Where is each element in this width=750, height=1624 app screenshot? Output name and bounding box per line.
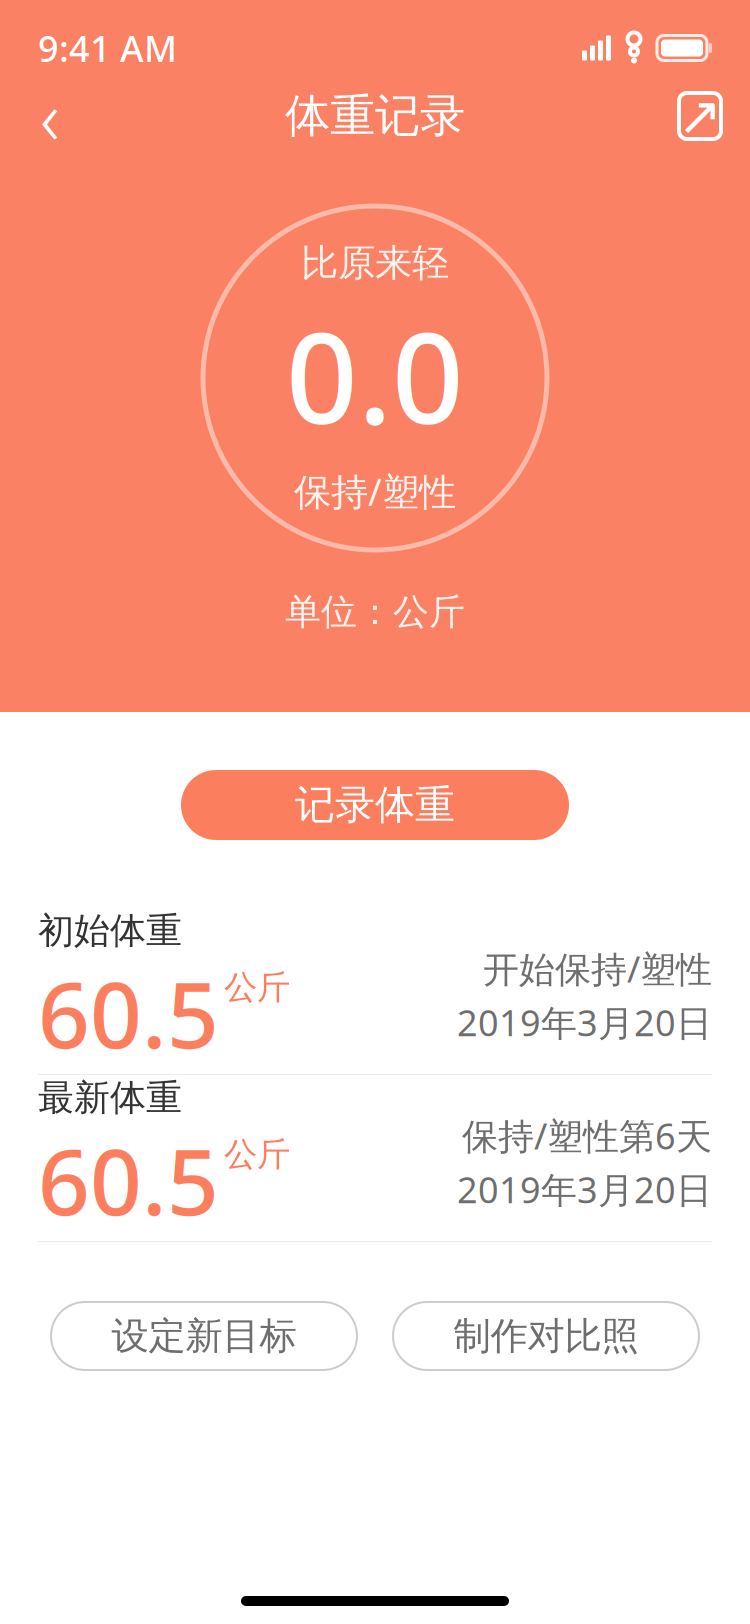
staticText: 保持/塑性 [294,466,456,516]
button[interactable]: 设定新目标 [51,1302,357,1370]
staticText: 初始体重 [38,909,182,953]
staticText: 60.5 [38,953,219,1073]
button[interactable]: 制作对比照 [393,1302,699,1370]
staticText: ↗ [677,86,722,146]
staticText: 体重记录 [285,88,465,144]
button[interactable]: 返回 [14,80,86,152]
staticText: ‹ [40,66,60,166]
staticText: 9:41 AM [38,24,177,72]
staticText: 最新体重 [38,1076,182,1120]
staticText: 2019年3月20日 [457,1165,712,1213]
staticText: 公斤 [224,967,290,1008]
staticText: 开始保持/塑性 [483,945,712,992]
staticText: 记录体重 [295,780,455,829]
staticText: 60.5 [38,1120,219,1240]
staticText: 0.0 [286,292,464,458]
staticText: 制作对比照 [453,1313,638,1359]
staticText: 2019年3月20日 [457,998,712,1046]
staticText: 公斤 [224,1134,290,1175]
button[interactable]: 分享 [664,80,736,152]
staticText: 设定新目标 [111,1313,296,1359]
staticText: 单位：公斤 [285,590,465,634]
staticText: 比原来轻 [301,240,449,286]
staticText: 保持/塑性第6天 [462,1112,712,1159]
button[interactable]: 记录体重 [181,770,569,840]
